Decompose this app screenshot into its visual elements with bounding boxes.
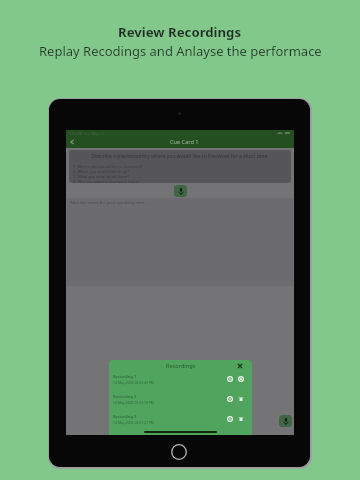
staticText: 14-May-2023 03:01:27 PM [113,420,154,425]
button[interactable]: Delete [236,414,245,423]
button[interactable]: Play [225,394,234,403]
staticText: Replay Recodings and Anlayse the perform… [39,42,322,60]
staticText: 1. Where you would like to live/work? [73,164,143,169]
staticText: 3:03 PM Sun May 14 [69,131,104,136]
button[interactable]: Recordings [279,415,292,427]
staticText: 4. Why you want to live/work there? [73,179,140,183]
staticText: 2. When you would like to go? [73,169,129,174]
staticText: Recording 3 [113,414,137,420]
button[interactable]: Stop [236,374,245,383]
button[interactable]: Play [225,414,234,423]
staticText: 14-May-2023 03:03:45 PM [113,380,154,385]
staticText: Recording 2 [113,394,137,400]
button[interactable]: Recording 1 [109,372,252,392]
staticText: 14-May-2023 03:03:18 PM [113,400,154,405]
staticText: Describe a place/country where you would… [73,153,287,160]
staticText: Cue Card 1 [170,138,199,146]
staticText: 3. What you what to do there? [73,174,130,179]
staticText: Recording 1 [113,374,137,380]
staticText: Review Recordings [118,23,242,41]
staticText: Recordings [166,362,196,370]
button[interactable]: Delete [236,394,245,403]
button[interactable]: Play [225,374,234,383]
button[interactable]: Back [67,137,77,147]
button[interactable]: Recording 2 [109,392,252,412]
button[interactable]: Close [236,362,244,370]
button[interactable]: Recording 3 [109,412,252,432]
staticText: Take the notes for your speaking here ..… [70,200,149,206]
button[interactable]: Record [174,185,187,197]
